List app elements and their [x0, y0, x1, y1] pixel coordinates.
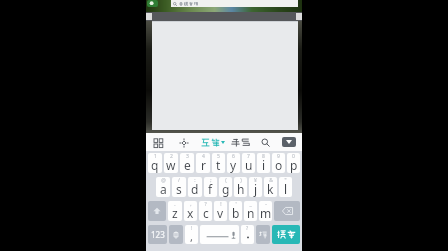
button[interactable]: Search [261, 138, 270, 147]
staticText: ) [240, 177, 242, 184]
button[interactable]: , [184, 201, 197, 221]
staticText: & [269, 177, 273, 184]
staticText: 123 [151, 229, 165, 240]
staticText: 7 [247, 153, 250, 160]
button[interactable]: Delete [274, 201, 300, 221]
staticText: 4 [202, 153, 205, 160]
staticText: h [237, 181, 245, 197]
button[interactable]: Keyboard layouts [154, 138, 164, 148]
button[interactable]: Period [241, 225, 254, 244]
staticText: l [284, 181, 288, 197]
button[interactable]: Space [200, 225, 239, 244]
staticText: w [166, 157, 176, 173]
staticText: b [232, 205, 240, 221]
button[interactable]: / [172, 177, 186, 197]
button[interactable]: 8 [257, 153, 270, 173]
staticText: g [222, 181, 230, 197]
button[interactable] [231, 138, 250, 147]
staticText: v [217, 205, 224, 221]
button[interactable]: Comma [185, 225, 198, 244]
button[interactable]: Symbols [256, 225, 270, 244]
button[interactable]: ) [234, 177, 247, 197]
staticText: n [247, 205, 255, 221]
staticText: ( [225, 177, 227, 184]
staticText: t [216, 157, 221, 173]
button[interactable]: ! [214, 201, 227, 221]
button[interactable]: Search [272, 225, 300, 244]
staticText: / [178, 177, 180, 184]
staticText: r [201, 157, 206, 173]
button[interactable] [201, 138, 225, 147]
staticText: . [174, 201, 176, 208]
staticText: 1 [154, 153, 157, 160]
button[interactable]: ? [199, 201, 212, 221]
button[interactable]: 7 [242, 153, 255, 173]
staticText: 8 [262, 153, 265, 160]
button[interactable]: Numbers [148, 225, 167, 244]
staticText: o [275, 157, 283, 173]
button[interactable]: Hide keyboard [282, 137, 296, 147]
staticText: m [260, 205, 272, 221]
staticText: 2 [170, 153, 173, 160]
staticText: q [151, 157, 159, 173]
button[interactable]: _ [244, 201, 257, 221]
button[interactable]: 9 [272, 153, 285, 173]
button[interactable]: Chinese input [169, 225, 183, 244]
button[interactable]: - [259, 201, 272, 221]
staticText: d [191, 181, 199, 197]
staticText: z [172, 205, 178, 221]
button[interactable]: & [264, 177, 277, 197]
staticText: ? [204, 201, 207, 208]
button[interactable]: 5 [212, 153, 225, 173]
staticText: f [208, 181, 213, 197]
staticText: ' [235, 201, 237, 208]
staticText: y [230, 157, 237, 173]
staticText: , [190, 201, 192, 208]
staticText: p [290, 157, 298, 173]
button[interactable]: Move cursor [179, 138, 189, 148]
button[interactable]: 2 [164, 153, 178, 173]
staticText: x [187, 205, 194, 221]
staticText: c [203, 205, 209, 221]
staticText: 3 [186, 153, 189, 160]
staticText: 5 [217, 153, 220, 160]
staticText: 9 [277, 153, 280, 160]
button[interactable]: ; [204, 177, 217, 197]
button[interactable]: 4 [196, 153, 210, 173]
button[interactable]: 1 [148, 153, 162, 173]
button[interactable]: ' [229, 201, 242, 221]
staticText: ? [246, 225, 249, 232]
staticText: ! [220, 201, 222, 208]
button[interactable]: @ [156, 177, 170, 197]
button[interactable]: ¥ [249, 177, 262, 197]
staticText: ! [191, 225, 193, 232]
button[interactable]: " [279, 177, 292, 197]
staticText: - [265, 201, 267, 208]
staticText: a [160, 181, 167, 197]
button[interactable]: : [188, 177, 202, 197]
staticText: _ [249, 201, 252, 208]
staticText: ; [210, 177, 212, 184]
staticText: k [267, 181, 274, 197]
button[interactable]: App logo [147, 0, 158, 7]
button[interactable]: . [168, 201, 182, 221]
staticText: : [194, 177, 196, 184]
staticText: @ [161, 177, 166, 184]
staticText: ¥ [254, 177, 257, 184]
button[interactable] [171, 0, 298, 7]
staticText: 6 [232, 153, 235, 160]
staticText: i [262, 157, 266, 173]
staticText: , [190, 229, 193, 244]
staticText: " [284, 177, 287, 184]
button[interactable]: 0 [287, 153, 300, 173]
staticText: j [254, 181, 258, 197]
staticText: u [245, 157, 253, 173]
button[interactable]: 6 [227, 153, 240, 173]
staticText: s [176, 181, 182, 197]
button[interactable]: Shift [148, 201, 166, 221]
button[interactable]: 3 [180, 153, 194, 173]
button[interactable]: ( [219, 177, 232, 197]
staticText: e [184, 157, 191, 173]
staticText: 0 [292, 153, 295, 160]
